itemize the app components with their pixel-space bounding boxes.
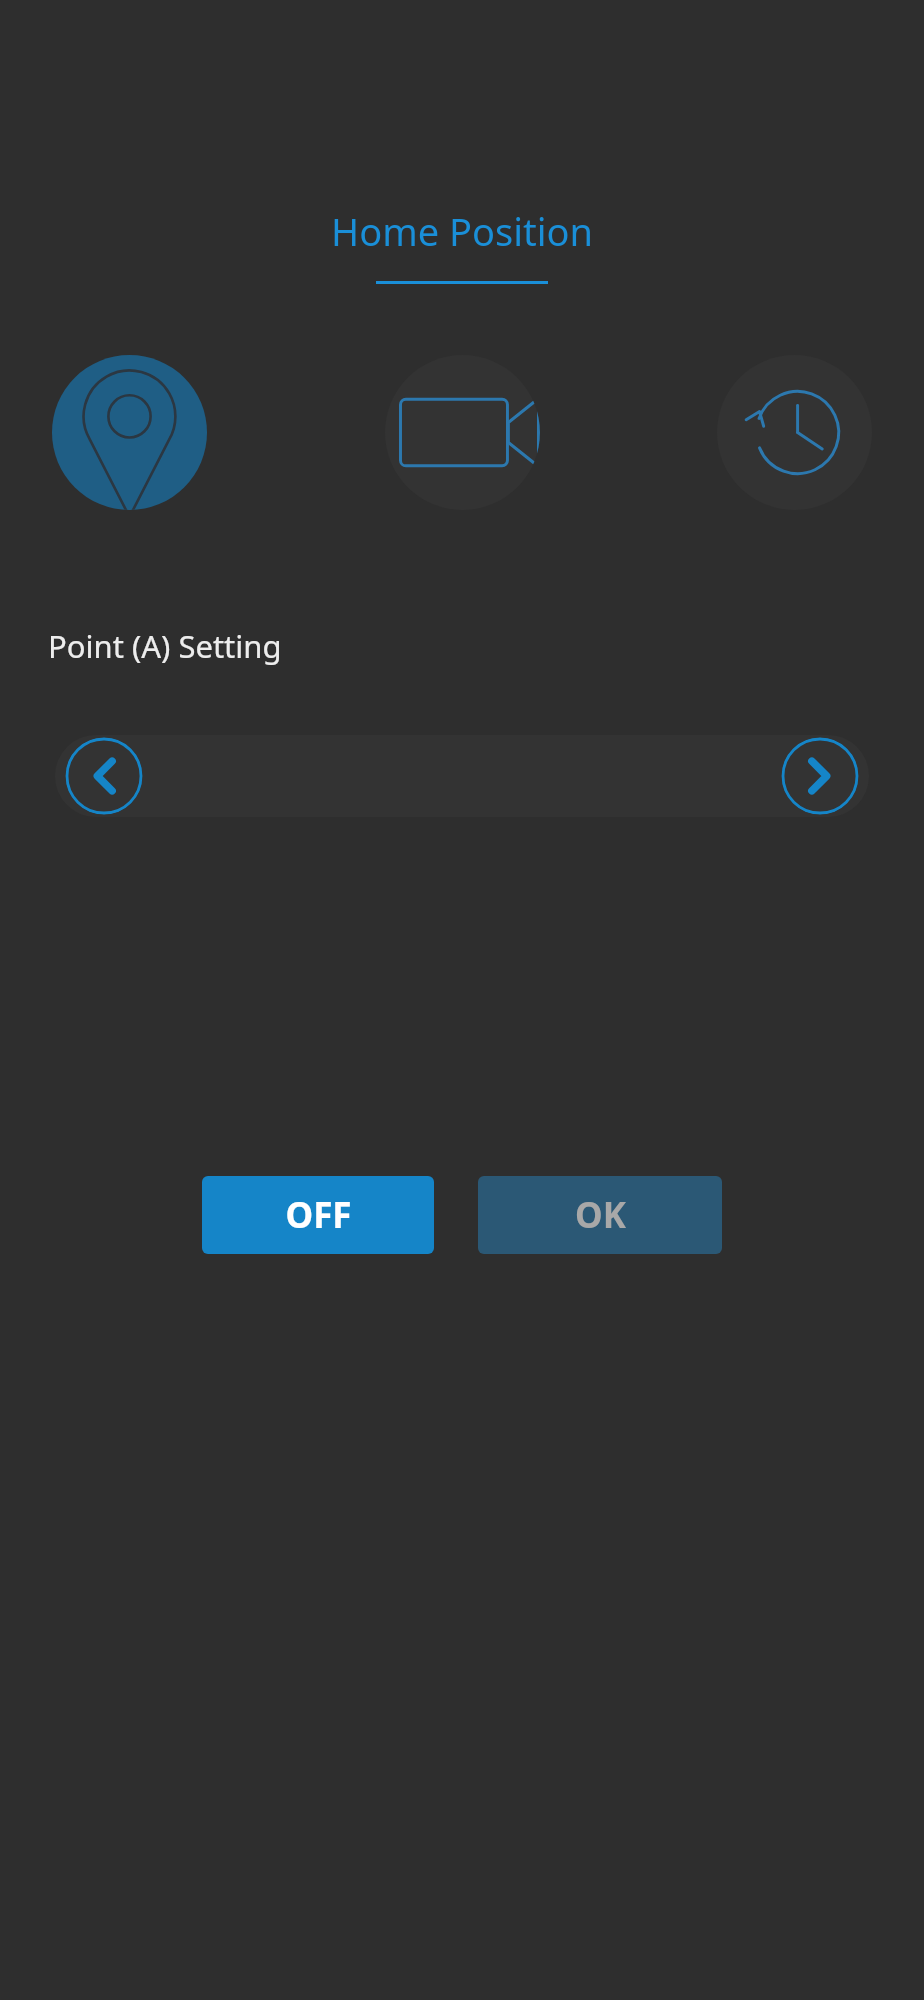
button[interactable]: Previous xyxy=(65,737,143,815)
button[interactable]: Next xyxy=(781,737,859,815)
button[interactable]: OK xyxy=(478,1176,722,1254)
button[interactable]: Home position xyxy=(52,355,207,510)
staticText: Point (A) Setting xyxy=(48,625,282,667)
staticText: OFF xyxy=(285,1191,352,1239)
staticText: Home Position xyxy=(0,205,924,257)
button[interactable]: History xyxy=(717,355,872,510)
button[interactable]: OFF xyxy=(202,1176,434,1254)
button[interactable]: Video recording xyxy=(385,355,540,510)
staticText: OK xyxy=(575,1191,626,1239)
